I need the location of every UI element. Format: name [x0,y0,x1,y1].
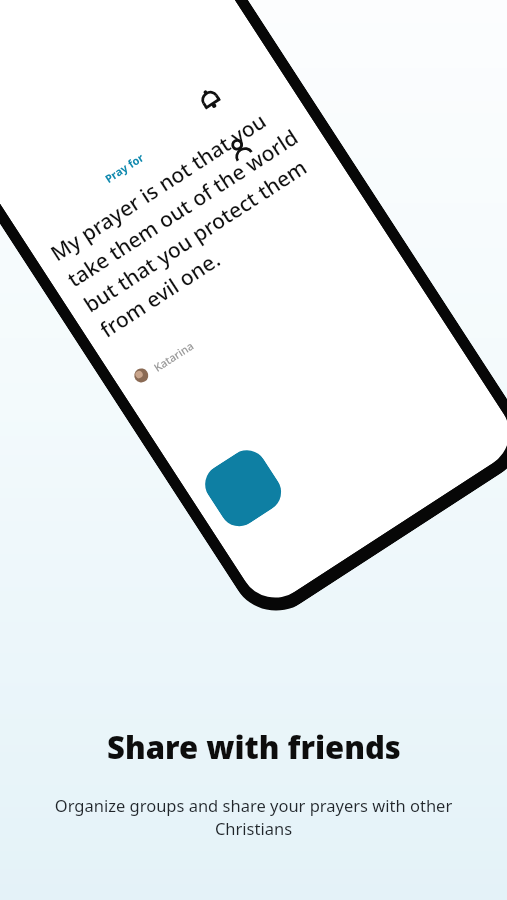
staticText: Organize groups and share your prayers w… [24,794,483,840]
button[interactable]: Share with friends [216,126,263,173]
staticText: My prayer is not that you take them out … [45,91,345,343]
staticText: Katarina [151,338,196,375]
button[interactable]: My prayer is not that you take them out … [45,91,345,343]
staticText: Pray for [102,149,147,186]
staticText: Share with friends [107,726,401,768]
button[interactable]: Add prayer [197,442,289,534]
button[interactable]: Notifications [187,76,234,123]
